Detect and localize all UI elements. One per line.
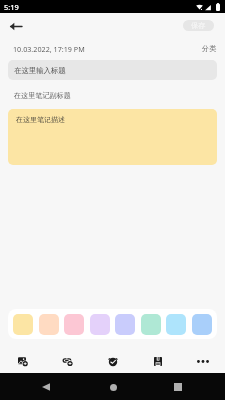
button[interactable]: Save note (135, 349, 180, 373)
staticText: 分类 (202, 44, 217, 53)
button[interactable]: 在这里笔记描述 (8, 109, 217, 165)
staticText: 10.03.2022, 17:19 PM (13, 44, 85, 54)
button[interactable]: Recent apps (165, 374, 191, 400)
staticText: 保存 (191, 21, 206, 30)
staticText: 5:19 (4, 2, 19, 12)
button[interactable]: Back (33, 374, 59, 400)
button[interactable]: Colour swatch (115, 314, 135, 335)
button[interactable]: More options (180, 349, 225, 373)
button[interactable]: Colour swatch (64, 314, 84, 335)
button[interactable]: Back (5, 15, 27, 37)
button[interactable]: Colour swatch (13, 314, 33, 335)
button[interactable]: 保存 (183, 20, 214, 31)
button[interactable]: Add image (0, 349, 45, 373)
button[interactable]: Colour swatch (90, 314, 110, 335)
button[interactable]: Colour swatch (192, 314, 212, 335)
staticText: 在这里笔记副标题 (14, 91, 71, 100)
button[interactable]: Add link (45, 349, 90, 373)
button[interactable]: 在这里输入标题 (8, 60, 217, 80)
button[interactable]: Home (100, 374, 126, 400)
button[interactable]: Colour swatch (166, 314, 186, 335)
button[interactable]: Colour swatch (39, 314, 59, 335)
button[interactable]: Colour swatch (141, 314, 161, 335)
staticText: 在这里输入标题 (14, 66, 66, 75)
staticText: 在这里笔记描述 (16, 115, 65, 124)
button[interactable]: 分类 (200, 43, 219, 54)
button[interactable]: 在这里笔记副标题 (8, 80, 217, 103)
button[interactable]: Set reminder (90, 349, 135, 373)
